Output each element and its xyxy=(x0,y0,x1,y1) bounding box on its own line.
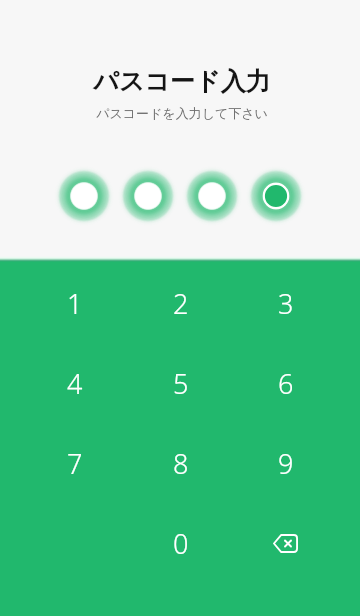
staticText: パスコード入力 xyxy=(93,66,271,97)
staticText: 3 xyxy=(278,285,294,322)
button[interactable]: 5 xyxy=(128,343,233,423)
staticText: 5 xyxy=(173,365,189,402)
button[interactable]: 9 xyxy=(233,423,338,503)
button[interactable]: 8 xyxy=(128,423,233,503)
staticText: 0 xyxy=(173,525,189,562)
button[interactable]: Backspace xyxy=(233,503,338,583)
staticText: 9 xyxy=(278,445,294,482)
staticText: パスコードを入力して下さい xyxy=(96,105,268,121)
staticText: 1 xyxy=(67,285,83,322)
button[interactable]: 3 xyxy=(233,263,338,343)
button[interactable]: 0 xyxy=(128,503,233,583)
staticText: 8 xyxy=(173,445,189,482)
staticText: 7 xyxy=(67,445,83,482)
staticText: 6 xyxy=(278,365,294,402)
staticText: 4 xyxy=(67,365,83,402)
staticText: 2 xyxy=(173,285,189,322)
button[interactable]: 1 xyxy=(22,263,128,343)
button[interactable]: 2 xyxy=(128,263,233,343)
button[interactable]: 4 xyxy=(22,343,128,423)
other: Backspace xyxy=(273,534,298,553)
button[interactable]: 7 xyxy=(22,423,128,503)
button[interactable]: 6 xyxy=(233,343,338,423)
